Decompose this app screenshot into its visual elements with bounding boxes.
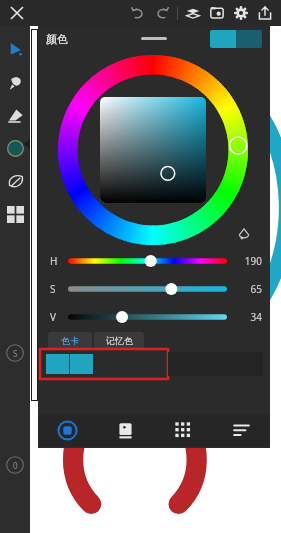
button[interactable]: Eraser [0,99,30,132]
staticText: S [13,348,18,359]
button[interactable]: Layers [181,1,205,25]
staticText: 190 [244,254,262,268]
button[interactable]: Layer count [6,456,24,474]
button[interactable]: Share [253,1,277,25]
staticText: S [50,282,56,296]
button[interactable]: Grid [154,414,212,447]
button[interactable]: Saved swatch [46,354,93,374]
staticText: V [50,310,56,324]
button[interactable]: Undo [126,1,150,25]
button[interactable]: V slider [38,306,270,328]
button[interactable]: H slider [38,250,270,272]
button[interactable]: Close [6,2,28,24]
staticText: 0 [13,460,18,471]
staticText: 记忆色 [106,335,133,346]
staticText: 色卡 [61,335,79,346]
button[interactable]: Menu [212,414,270,447]
button[interactable]: 色卡 [48,332,92,349]
button[interactable]: Grid [0,198,30,231]
staticText: 34 [250,310,262,324]
button[interactable]: Settings [229,1,253,25]
button[interactable]: Brush [0,33,30,66]
staticText: H [50,254,58,268]
button[interactable]: Eyedropper [234,224,254,244]
button[interactable]: Image [205,1,229,25]
button[interactable]: Color wheel [58,55,248,245]
button[interactable]: Brush size [31,29,38,401]
button[interactable]: Current color [210,30,262,48]
button[interactable]: Shapes [0,165,30,198]
button[interactable]: Color [38,414,96,447]
button[interactable]: Palette [96,414,154,447]
button[interactable]: Color [0,132,30,165]
button[interactable]: Symmetry [6,344,24,362]
button[interactable]: Redo [150,1,174,25]
staticText: 65 [250,282,262,296]
button[interactable]: 记忆色 [94,332,144,349]
button[interactable]: Smudge [0,66,30,99]
button[interactable]: S slider [38,278,270,300]
staticText: 颜色 [46,32,68,46]
